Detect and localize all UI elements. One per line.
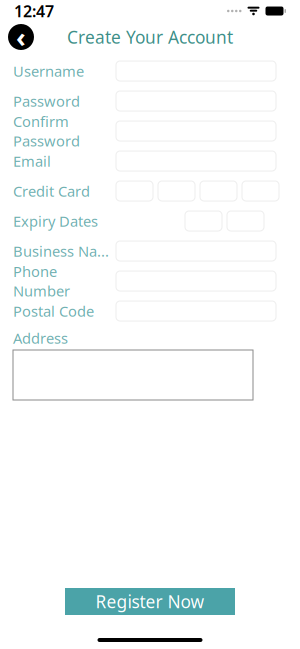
staticText: Username <box>13 61 84 81</box>
button[interactable]: Back <box>4 22 38 52</box>
staticText: Email <box>13 151 51 171</box>
staticText: 12:47 <box>14 0 54 22</box>
staticText: Credit Card <box>13 181 90 201</box>
staticText: Password <box>13 91 80 111</box>
staticText: Register Now <box>95 590 204 613</box>
staticText: Confirm Password <box>13 111 80 150</box>
staticText: Create Your Account <box>67 25 233 48</box>
staticText: Expiry Dates <box>13 211 98 231</box>
staticText: Address <box>13 328 68 348</box>
staticText: Postal Code <box>13 301 94 321</box>
staticText: Business Na... <box>13 241 109 261</box>
staticText: Phone Number <box>13 261 70 300</box>
staticText: ‹ <box>16 19 26 55</box>
button[interactable]: Register Now <box>65 588 235 615</box>
